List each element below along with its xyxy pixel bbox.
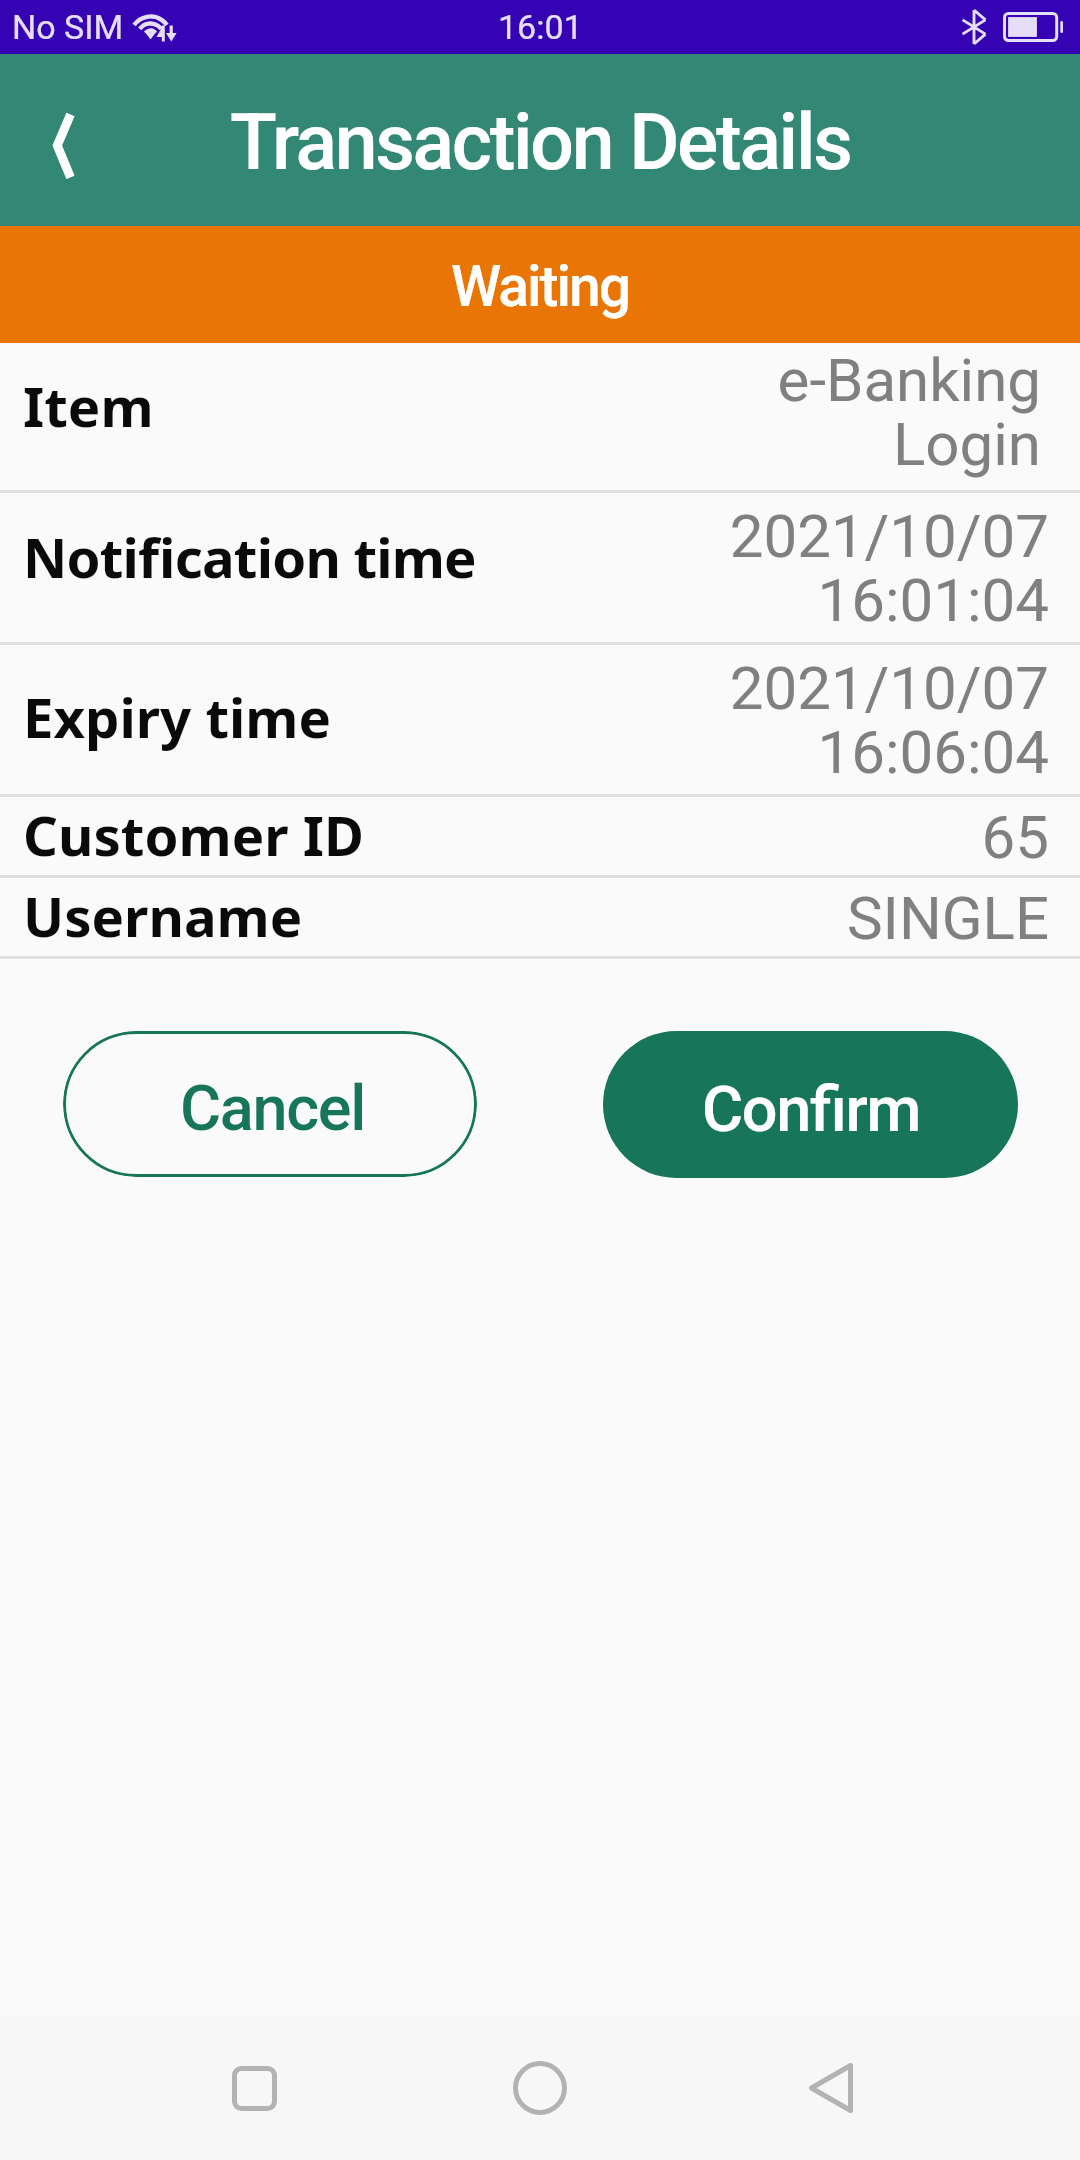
button[interactable]: Confirm bbox=[603, 1031, 1018, 1178]
button[interactable]: Recent apps bbox=[194, 2028, 314, 2148]
staticText: e-Banking Login bbox=[777, 345, 1041, 480]
staticText: Item bbox=[23, 369, 154, 443]
button[interactable]: Back bbox=[0, 54, 128, 226]
staticText: Cancel bbox=[180, 1072, 366, 1146]
staticText: 2021/10/07 16:06:04 bbox=[729, 653, 1049, 788]
staticText: Confirm bbox=[702, 1073, 921, 1147]
button[interactable]: Notification time bbox=[0, 494, 1080, 642]
button[interactable]: Customer ID bbox=[0, 798, 1080, 875]
staticText: Customer ID bbox=[23, 798, 364, 872]
staticText: Username bbox=[23, 879, 303, 953]
button[interactable]: Username bbox=[0, 879, 1080, 956]
button[interactable]: Cancel bbox=[63, 1031, 477, 1177]
staticText: Waiting bbox=[451, 253, 630, 320]
staticText: Notification time bbox=[23, 520, 476, 594]
button[interactable]: Item bbox=[0, 343, 1080, 490]
button[interactable]: Home bbox=[480, 2028, 600, 2148]
staticText: 65 bbox=[981, 802, 1049, 872]
staticText: SINGLE bbox=[846, 883, 1049, 953]
staticText: Expiry time bbox=[23, 680, 332, 754]
staticText: 2021/10/07 16:01:04 bbox=[729, 501, 1049, 636]
button[interactable]: Expiry time bbox=[0, 646, 1080, 794]
staticText: No SIM bbox=[12, 7, 124, 47]
button[interactable]: Back bbox=[770, 2028, 890, 2148]
staticText: 16:01 bbox=[498, 7, 583, 47]
staticText: Transaction Details bbox=[230, 98, 851, 188]
